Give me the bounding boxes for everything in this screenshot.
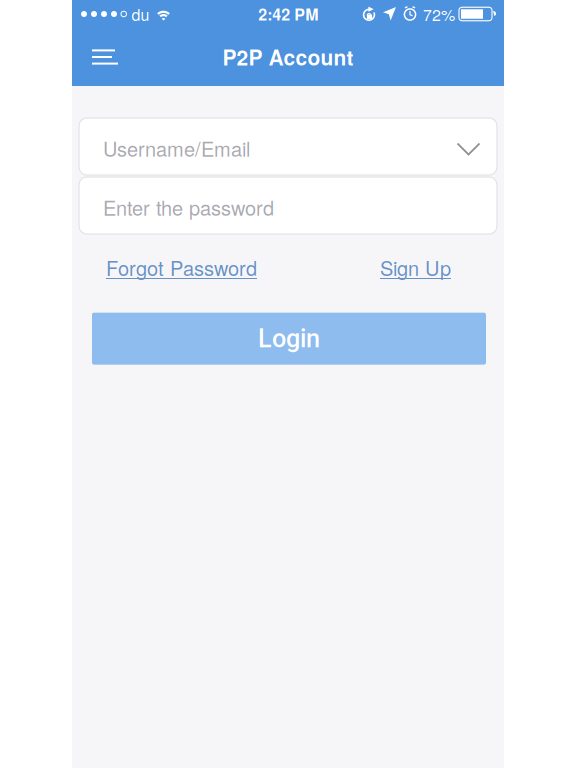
staticText: Sign Up xyxy=(380,253,451,282)
staticText: du xyxy=(131,2,149,25)
button[interactable]: Sign Up xyxy=(380,253,451,282)
staticText: Forgot Password xyxy=(106,253,257,282)
staticText: 2:42 PM xyxy=(258,2,318,25)
staticText: P2P Account xyxy=(222,42,353,72)
staticText: Enter the password xyxy=(103,193,274,221)
button[interactable]: Menu xyxy=(72,37,118,77)
button[interactable]: Login xyxy=(92,313,486,365)
staticText: Username/Email xyxy=(103,134,250,162)
button[interactable]: Enter the password xyxy=(79,177,497,234)
button[interactable]: Forgot Password xyxy=(106,253,257,282)
button[interactable]: Username/Email xyxy=(79,118,497,175)
staticText: 72% xyxy=(423,2,455,25)
staticText: Login xyxy=(258,324,320,353)
